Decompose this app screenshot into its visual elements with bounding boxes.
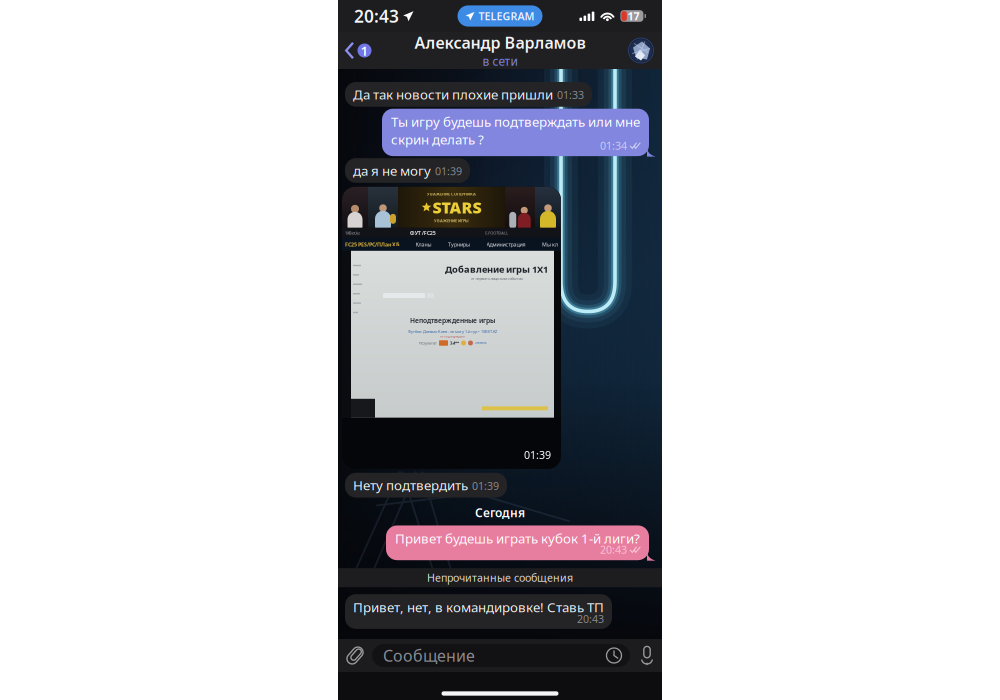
staticText: FC25 PES/PC/ПЛан XБ — [345, 241, 399, 248]
button[interactable]: Back — [338, 32, 379, 69]
staticText: Ты игру будешь подтверждать или мне скри… — [391, 113, 640, 148]
staticText: да я не могу — [353, 162, 431, 179]
staticText: Кланы — [415, 241, 431, 248]
button[interactable]: Record voice message — [632, 639, 662, 672]
staticText: Привет, нет, в командировке! Ставь ТП — [353, 598, 604, 616]
staticText: 17 — [627, 9, 639, 23]
staticText: Результат — [419, 340, 437, 346]
staticText: в сети — [482, 53, 517, 69]
staticText: Мы кл — [542, 241, 558, 248]
staticText: Сегодня — [475, 504, 525, 520]
staticText: 1 — [360, 42, 368, 59]
staticText: 01:39 — [435, 164, 462, 178]
button[interactable]: Schedule message — [606, 647, 622, 663]
staticText: Александр Варламов — [414, 32, 585, 53]
staticText: Ответить — [475, 341, 486, 345]
staticText: 01:33 — [557, 88, 584, 102]
button[interactable]: Telegram live activity — [457, 5, 542, 27]
staticText: Футбол: Динамо Киев - не могу 1-й тур • … — [408, 329, 497, 334]
staticText: Турниры — [448, 241, 470, 248]
staticText: не подтверждено — [440, 335, 465, 338]
staticText: Привет будешь играть кубок 1-й лиги? — [395, 529, 640, 547]
staticText: 3-4** — [450, 340, 459, 346]
staticText: ФУТ /FC25 — [410, 229, 436, 236]
staticText: Нету подтвердить — [353, 476, 468, 494]
staticText: STARS — [432, 197, 481, 218]
button[interactable]: Attach file — [338, 639, 372, 672]
staticText: 20:43 — [354, 4, 399, 27]
staticText: 20:43 — [600, 542, 627, 557]
staticText: 01:39 — [472, 479, 499, 493]
staticText: 1XBet.kz — [345, 230, 360, 235]
staticText: Добавление игры 1Х1 — [445, 263, 548, 275]
staticText: УВАЖЕНИЕ ИГРЫ — [434, 218, 469, 223]
staticText: Сообщение — [383, 645, 475, 666]
staticText: 01:34 — [600, 138, 627, 153]
staticText: E-FOOTBALL — [485, 230, 508, 235]
staticText: Да так новости плохие пришли — [353, 85, 553, 103]
staticText: Администрация — [486, 241, 525, 248]
staticText: 01:39 — [524, 448, 551, 462]
button[interactable]: Open profile — [628, 32, 662, 69]
staticText: TELEGRAM — [478, 9, 534, 23]
staticText: Неподтвержденные игры — [410, 316, 495, 325]
staticText: УВАЖЕНИЕ СОПЕРНИКА — [427, 191, 476, 197]
staticText: Непрочитанные сообщения — [427, 571, 573, 585]
staticText: 20:43 — [577, 612, 604, 626]
staticText: от первого лица мои события — [470, 276, 522, 281]
